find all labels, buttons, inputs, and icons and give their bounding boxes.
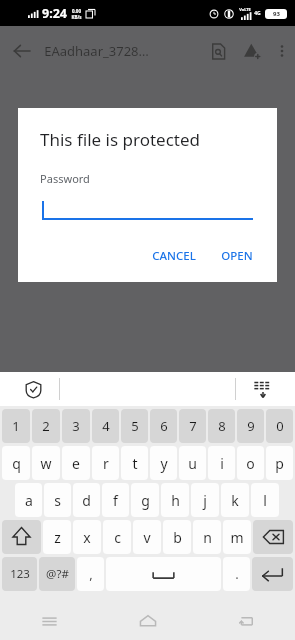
button[interactable]: n — [193, 520, 221, 554]
button[interactable]: 8 — [208, 409, 235, 443]
button[interactable]: c — [103, 520, 131, 554]
staticText: s — [54, 491, 61, 510]
staticText: 3 — [72, 417, 80, 435]
staticText: k — [231, 491, 239, 510]
button[interactable]: u — [179, 446, 206, 480]
button[interactable]: l — [251, 483, 279, 517]
staticText: j — [203, 491, 207, 510]
button[interactable]: @?# — [39, 557, 75, 591]
button[interactable]: x — [73, 520, 101, 554]
button[interactable]: e — [62, 446, 90, 480]
button[interactable]: j — [191, 483, 219, 517]
button[interactable]: OPEN — [213, 242, 261, 270]
staticText: n — [203, 528, 212, 547]
button[interactable]: 7 — [179, 409, 206, 443]
button[interactable]: CANCEL — [144, 242, 204, 270]
button[interactable]: More options — [269, 26, 295, 76]
staticText: z — [54, 528, 61, 547]
staticText: 9 — [247, 417, 255, 435]
staticText: 93 — [273, 10, 280, 18]
staticText: . — [235, 565, 239, 583]
staticText: o — [246, 454, 255, 473]
button[interactable]: s — [44, 483, 71, 517]
staticText: 8 — [218, 417, 226, 435]
button[interactable]: p — [266, 446, 293, 480]
button[interactable]: v — [133, 520, 161, 554]
button[interactable]: 0 — [266, 409, 293, 443]
staticText: 0.00 — [72, 8, 81, 14]
button[interactable]: 1 — [2, 409, 30, 443]
staticText: KB/s — [71, 14, 82, 20]
staticText: 6 — [160, 417, 168, 435]
button[interactable]: o — [237, 446, 264, 480]
staticText: VoLTE — [239, 7, 251, 12]
staticText: 1 — [12, 417, 20, 435]
staticText: p — [275, 454, 284, 473]
button[interactable]: i — [208, 446, 235, 480]
staticText: This file is protected — [40, 128, 200, 151]
staticText: 9:24 — [42, 5, 67, 22]
staticText: i — [220, 454, 224, 473]
button[interactable]: Back — [197, 602, 295, 640]
button[interactable]: 5 — [121, 409, 148, 443]
staticText: t — [132, 454, 138, 473]
staticText: EAadhaar_3728… — [44, 42, 149, 60]
staticText: 0 — [276, 417, 284, 435]
staticText: OPEN — [221, 248, 253, 264]
staticText: b — [173, 528, 182, 547]
staticText: x — [83, 528, 91, 547]
button[interactable]: Home — [99, 602, 197, 640]
button[interactable]: Space — [106, 557, 221, 591]
button[interactable]: 2 — [32, 409, 60, 443]
button[interactable]: Enter — [252, 557, 293, 591]
button[interactable]: y — [150, 446, 177, 480]
button[interactable]: 6 — [150, 409, 177, 443]
staticText: v — [143, 528, 151, 547]
staticText: , — [89, 565, 93, 583]
button[interactable]: a — [15, 483, 42, 517]
staticText: r — [103, 454, 109, 473]
button[interactable]: 9 — [237, 409, 264, 443]
staticText: 4G — [254, 10, 261, 17]
button[interactable]: d — [73, 483, 100, 517]
button[interactable]: Recents — [0, 602, 99, 640]
staticText: h — [171, 491, 180, 510]
staticText: CANCEL — [152, 248, 196, 264]
button[interactable]: 3 — [62, 409, 90, 443]
staticText: Password — [40, 171, 90, 186]
button[interactable]: Find — [201, 26, 235, 76]
button[interactable]: g — [131, 483, 159, 517]
staticText: e — [72, 454, 80, 473]
button[interactable]: w — [32, 446, 60, 480]
button[interactable]: Back — [0, 26, 44, 76]
staticText: a — [25, 491, 33, 510]
button[interactable]: q — [2, 446, 30, 480]
button[interactable]: 4 — [92, 409, 119, 443]
staticText: 7 — [189, 417, 197, 435]
staticText: u — [188, 454, 197, 473]
button[interactable]: h — [161, 483, 189, 517]
staticText: c — [114, 528, 121, 547]
button[interactable]: k — [221, 483, 249, 517]
button[interactable]: 123 — [2, 557, 37, 591]
button[interactable]: r — [92, 446, 119, 480]
button[interactable]: Add to Drive — [235, 26, 269, 76]
staticText: f — [113, 491, 118, 510]
button[interactable]: Secure input — [20, 376, 46, 402]
staticText: @?# — [46, 566, 69, 582]
staticText: y — [160, 454, 168, 473]
button[interactable]: . — [223, 557, 250, 591]
button[interactable]: m — [223, 520, 251, 554]
staticText: m — [230, 528, 244, 547]
button[interactable]: Backspace — [253, 520, 293, 554]
button[interactable]: Shift — [2, 520, 41, 554]
button[interactable]: Hide keyboard — [249, 375, 277, 403]
staticText: q — [12, 454, 21, 473]
button[interactable]: , — [77, 557, 104, 591]
button[interactable]: b — [163, 520, 191, 554]
staticText: 5 — [131, 417, 139, 435]
button[interactable]: f — [102, 483, 129, 517]
staticText: w — [40, 454, 52, 473]
button[interactable]: z — [43, 520, 71, 554]
button[interactable]: t — [121, 446, 148, 480]
